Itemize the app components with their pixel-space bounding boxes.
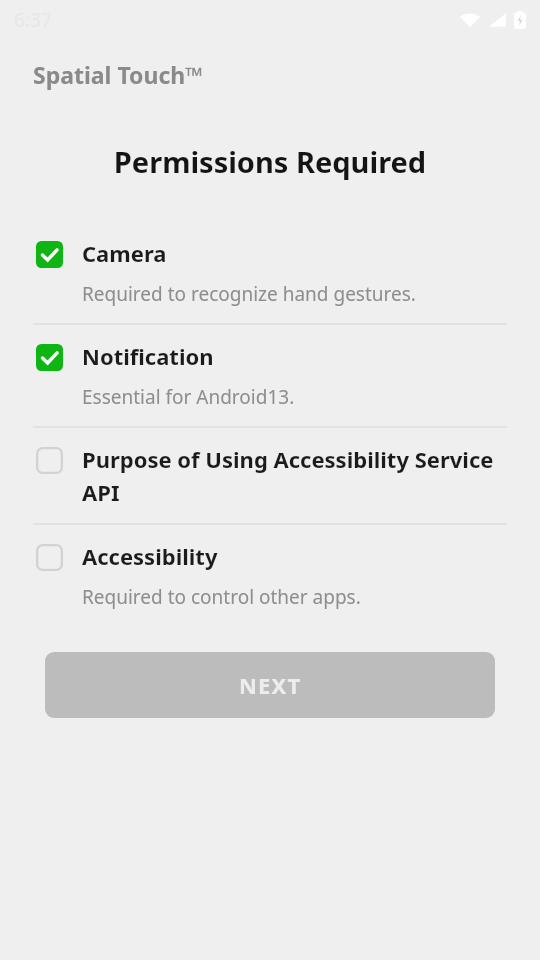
button[interactable]: Accessibility not granted (0, 525, 540, 626)
other: Notification granted (36, 344, 63, 371)
other: Purpose of Using Accessibility Service A… (36, 447, 63, 474)
staticText: Required to control other apps. (82, 584, 361, 610)
staticText: Permissions Required (0, 142, 540, 181)
other: Camera granted (36, 241, 63, 268)
staticText: Accessibility (82, 541, 218, 571)
button[interactable]: NEXT (45, 652, 495, 718)
staticText: Purpose of Using Accessibility Service A… (82, 444, 507, 507)
staticText: Camera (82, 238, 167, 268)
staticText: Essential for Android13. (82, 384, 295, 410)
button[interactable]: Camera granted (0, 222, 540, 323)
button[interactable]: Notification granted (0, 325, 540, 426)
staticText: Required to recognize hand gestures. (82, 281, 416, 307)
staticText: Notification (82, 341, 214, 371)
other: Accessibility not granted (36, 544, 63, 571)
staticText: Spatial Touch™ (33, 59, 204, 90)
staticText: NEXT (239, 670, 302, 700)
button[interactable]: Purpose of Using Accessibility Service A… (0, 428, 540, 523)
